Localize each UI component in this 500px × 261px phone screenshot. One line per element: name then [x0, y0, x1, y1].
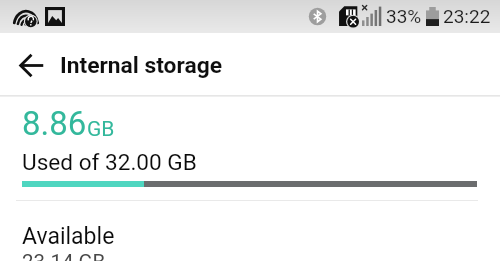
staticText: 8.86	[22, 104, 87, 143]
staticText: Available	[22, 223, 115, 250]
staticText: 23:22	[443, 5, 491, 27]
staticText: Used of 32.00 GB	[22, 149, 197, 175]
staticText: 33%	[386, 5, 422, 27]
staticText: 23.14 GB	[22, 250, 106, 261]
staticText: Internal storage	[60, 52, 223, 79]
button[interactable]: Navigate up	[7, 41, 55, 89]
staticText: GB	[87, 117, 115, 142]
